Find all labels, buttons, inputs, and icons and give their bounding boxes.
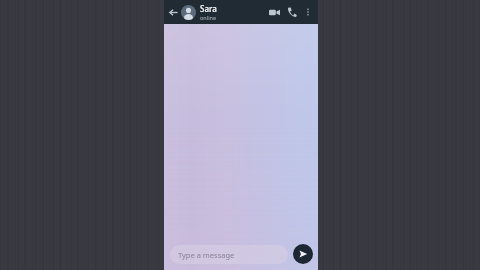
staticText: Type a message xyxy=(178,250,235,260)
staticText: Sara xyxy=(200,3,217,14)
staticText: online xyxy=(200,14,217,21)
button[interactable]: Back xyxy=(166,5,180,19)
button[interactable]: Type a message xyxy=(170,245,288,264)
button[interactable]: Sara xyxy=(181,0,265,24)
button[interactable]: Send xyxy=(293,244,313,264)
button[interactable]: Video call xyxy=(265,3,283,21)
button[interactable]: More options xyxy=(301,5,315,19)
button[interactable]: Call xyxy=(283,3,301,21)
